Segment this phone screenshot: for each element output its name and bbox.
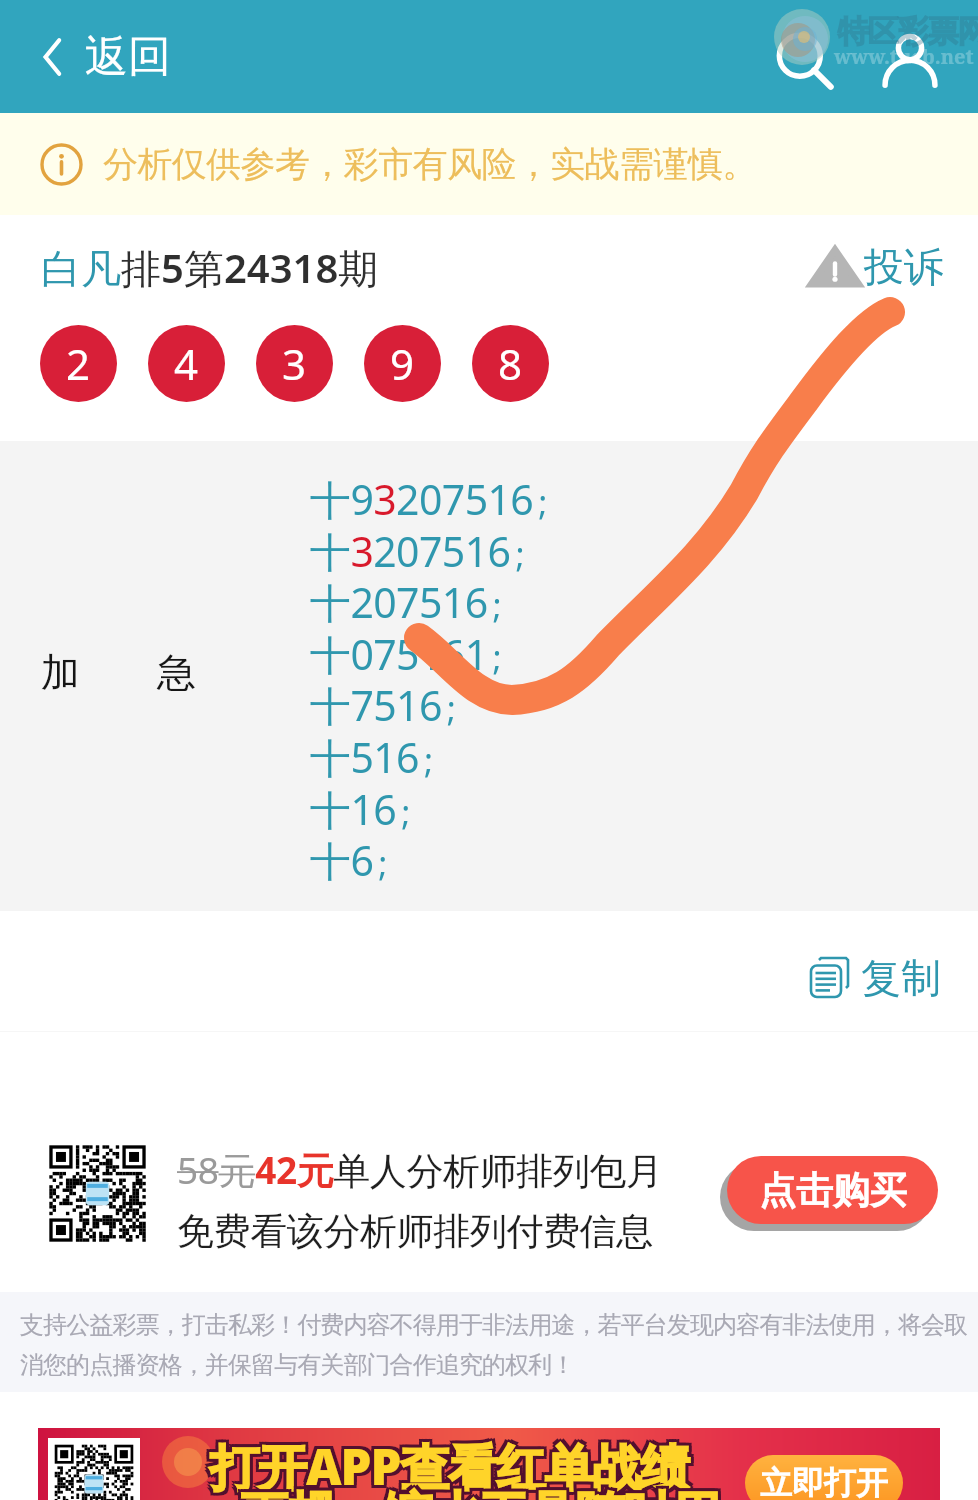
staticText: 十207516 ; xyxy=(310,574,502,630)
button[interactable]: Account xyxy=(870,22,950,102)
staticText: 免费看该分析师排列付费信息 xyxy=(177,1208,653,1255)
staticText: 3 xyxy=(282,335,307,392)
staticText: 立即打开 xyxy=(760,1463,888,1500)
staticText: 十075161 ; xyxy=(310,626,502,682)
button[interactable]: 投诉 xyxy=(806,238,948,296)
staticText: 更规、缩水工具随时用 xyxy=(240,1485,720,1500)
staticText: 打开APP查看红单战绩 xyxy=(213,1436,692,1500)
button[interactable]: 返回 xyxy=(0,18,187,96)
staticText: 8 xyxy=(498,335,523,392)
staticText: 打开APP查看红单战绩 xyxy=(210,1436,689,1500)
staticText: 白凡排5第24318期 xyxy=(41,240,379,295)
staticText: 分析仅供参考，彩市有风险，实战需谨慎。 xyxy=(103,142,757,186)
staticText: 支持公益彩票，打击私彩！付费内容不得用于非法用途，若平台发现内容有非法使用，将会… xyxy=(20,1310,972,1380)
staticText: 加 xyxy=(41,648,80,697)
staticText: 58元42元单人分析师排列包月 xyxy=(177,1144,663,1195)
staticText: 十16 ; xyxy=(310,781,410,837)
staticText: 更规、缩水工具随时用 xyxy=(243,1488,723,1500)
staticText: 4 xyxy=(174,335,199,392)
staticText: 打开APP查看红单战绩 xyxy=(207,1430,686,1497)
staticText: 十516 ; xyxy=(310,729,433,785)
staticText: 更规、缩水工具随时用 xyxy=(243,1482,723,1500)
staticText: 更规、缩水工具随时用 xyxy=(243,1485,723,1500)
staticText: 更规、缩水工具随时用 xyxy=(237,1482,717,1500)
staticText: 打开APP查看红单战绩 xyxy=(210,1430,689,1497)
staticText: 更规、缩水工具随时用 xyxy=(237,1485,717,1500)
staticText: 打开APP查看红单战绩 xyxy=(207,1433,686,1500)
staticText: 急 xyxy=(157,648,196,697)
staticText: 9 xyxy=(390,335,415,392)
staticText: 投诉 xyxy=(864,242,944,292)
staticText: www.tucb.net xyxy=(834,43,974,70)
button[interactable]: 点击购买 xyxy=(727,1156,938,1224)
staticText: 点击购买 xyxy=(759,1167,907,1214)
staticText: 打开APP查看红单战绩 xyxy=(210,1433,689,1500)
staticText: 返回 xyxy=(85,30,171,84)
staticText: 特区彩票网 xyxy=(838,12,978,51)
button[interactable]: 立即打开 xyxy=(745,1455,903,1500)
staticText: 更规、缩水工具随时用 xyxy=(240,1488,720,1500)
button[interactable]: 复制 xyxy=(802,947,945,1009)
staticText: 十93207516 ; xyxy=(310,471,547,527)
staticText: 更规、缩水工具随时用 xyxy=(237,1488,717,1500)
staticText: 2 xyxy=(66,335,91,392)
staticText: 复制 xyxy=(861,953,941,1003)
staticText: 打开APP查看红单战绩 xyxy=(213,1430,692,1497)
staticText: 十7516 ; xyxy=(310,677,456,733)
staticText: 打开APP查看红单战绩 xyxy=(213,1433,692,1500)
staticText: 十6 ; xyxy=(310,832,387,888)
staticText: 十3207516 ; xyxy=(310,523,524,579)
staticText: 更规、缩水工具随时用 xyxy=(240,1482,720,1500)
staticText: 打开APP查看红单战绩 xyxy=(207,1436,686,1500)
button[interactable]: Search xyxy=(766,22,846,102)
button[interactable]: 打开APP查看红单战绩 xyxy=(38,1428,940,1500)
